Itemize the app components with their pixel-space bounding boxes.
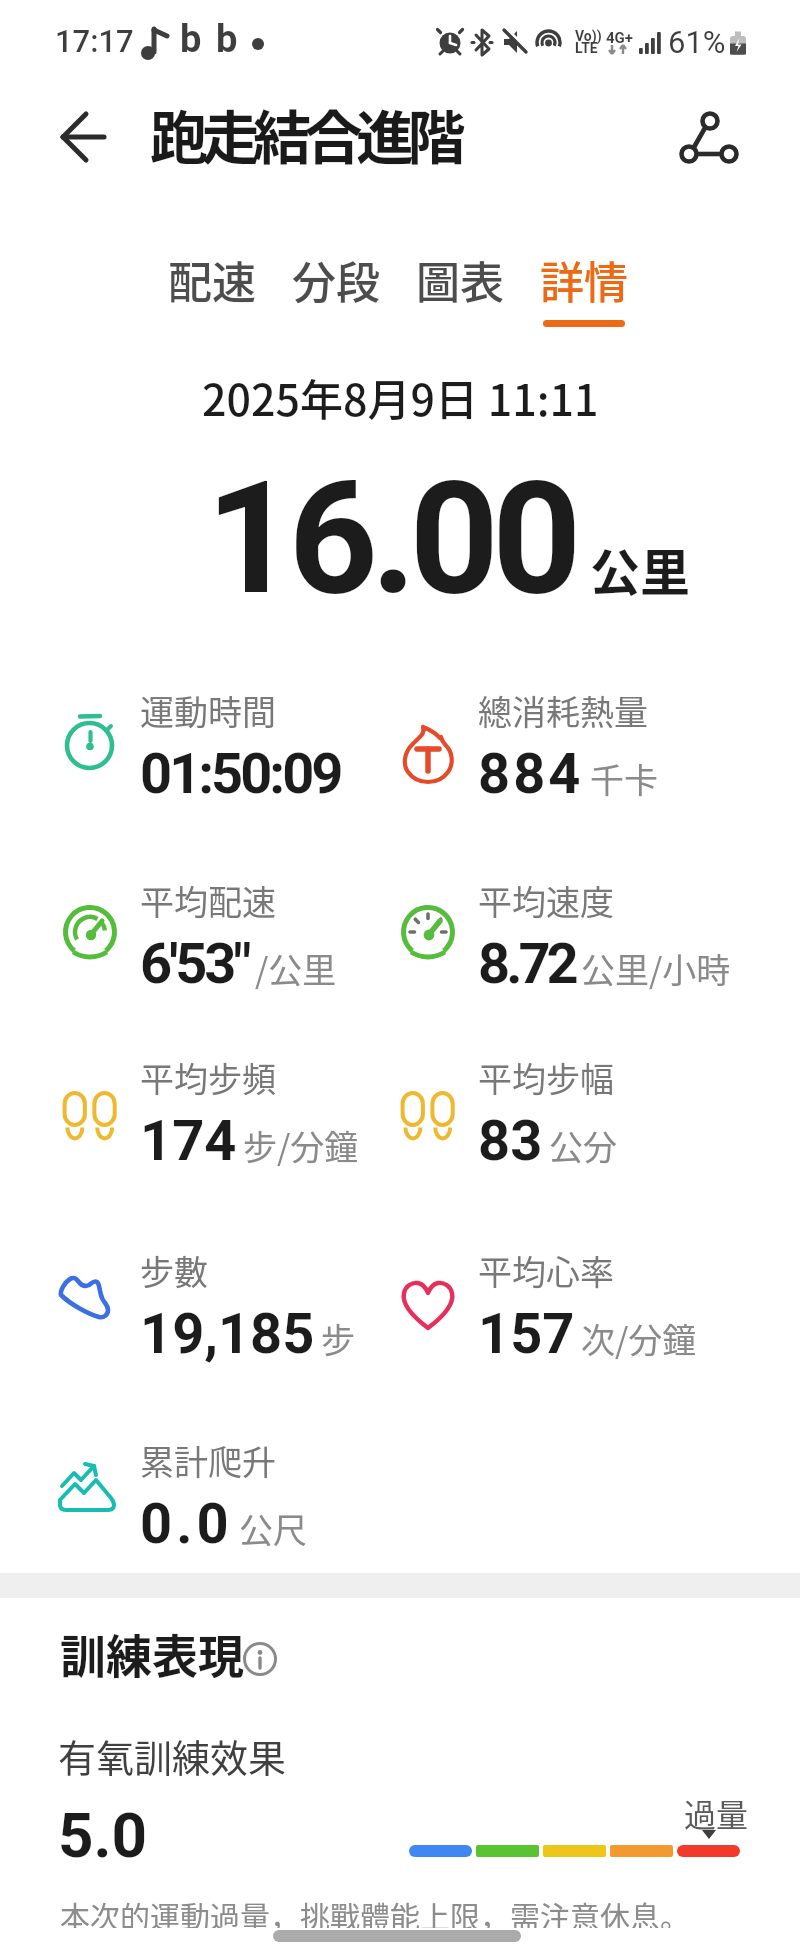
staticText: 公分 xyxy=(549,1121,617,1170)
staticText: 884 xyxy=(478,741,584,807)
staticText: 公尺 xyxy=(239,1504,307,1553)
staticText: 步/分鐘 xyxy=(243,1121,359,1170)
staticText: 跑走結合進階 xyxy=(150,92,460,176)
staticText: 有氧訓練效果 xyxy=(58,1728,287,1783)
staticText: 配速 xyxy=(168,248,256,312)
staticText: 累計爬升 xyxy=(140,1436,276,1485)
staticText: 6'53" xyxy=(140,931,249,997)
staticText: 公里/小時 xyxy=(581,944,731,993)
button[interactable]: 圖表 xyxy=(416,248,504,320)
staticText: 8.72 xyxy=(478,931,575,997)
staticText: 圖表 xyxy=(416,248,504,312)
button[interactable]: 分段 xyxy=(292,248,380,320)
staticText: 步 xyxy=(321,1314,355,1363)
staticText: 公里 xyxy=(590,533,690,605)
staticText: 01:50:09 xyxy=(140,741,341,807)
staticText: Vo)) xyxy=(575,28,602,44)
staticText: 19,185 xyxy=(140,1301,315,1367)
staticText: 5.0 xyxy=(58,1799,148,1872)
staticText: 157 xyxy=(478,1301,575,1367)
button[interactable]: 詳情 xyxy=(540,248,628,327)
button[interactable] xyxy=(240,1639,280,1679)
staticText: b xyxy=(216,17,238,62)
staticText: 運動時間 xyxy=(140,686,276,735)
button[interactable] xyxy=(670,105,742,177)
staticText: 平均配速 xyxy=(140,876,276,925)
staticText: /公里 xyxy=(255,944,337,993)
staticText: 本次的運動過量，挑戰體能上限，需注意休息。 xyxy=(60,1893,690,1936)
staticText: 61% xyxy=(668,24,726,60)
button[interactable]: 配速 xyxy=(168,248,256,320)
staticText: 83 xyxy=(478,1108,543,1174)
staticText: 千卡 xyxy=(590,754,658,803)
staticText: 平均心率 xyxy=(478,1246,614,1295)
staticText: 分段 xyxy=(292,248,380,312)
staticText: b xyxy=(180,17,202,62)
staticText: 詳情 xyxy=(540,248,628,312)
staticText: 0.0 xyxy=(140,1491,233,1557)
staticText: 步數 xyxy=(140,1246,208,1295)
staticText: 17:17 xyxy=(55,23,134,59)
staticText: LTE xyxy=(575,40,598,56)
staticText: 2025年8月9日 11:11 xyxy=(202,366,599,428)
staticText: 過量 xyxy=(684,1790,749,1836)
staticText: 16.00 xyxy=(206,447,575,630)
staticText: 總消耗熱量 xyxy=(478,686,648,735)
staticText: 平均速度 xyxy=(478,876,614,925)
button[interactable] xyxy=(48,105,112,169)
staticText: 次/分鐘 xyxy=(581,1314,697,1363)
staticText: 平均步幅 xyxy=(478,1053,614,1102)
staticText: 4G+ xyxy=(606,29,634,47)
staticText: 平均步頻 xyxy=(140,1053,276,1102)
staticText: 174 xyxy=(140,1108,237,1174)
staticText: 訓練表現 xyxy=(60,1620,244,1687)
